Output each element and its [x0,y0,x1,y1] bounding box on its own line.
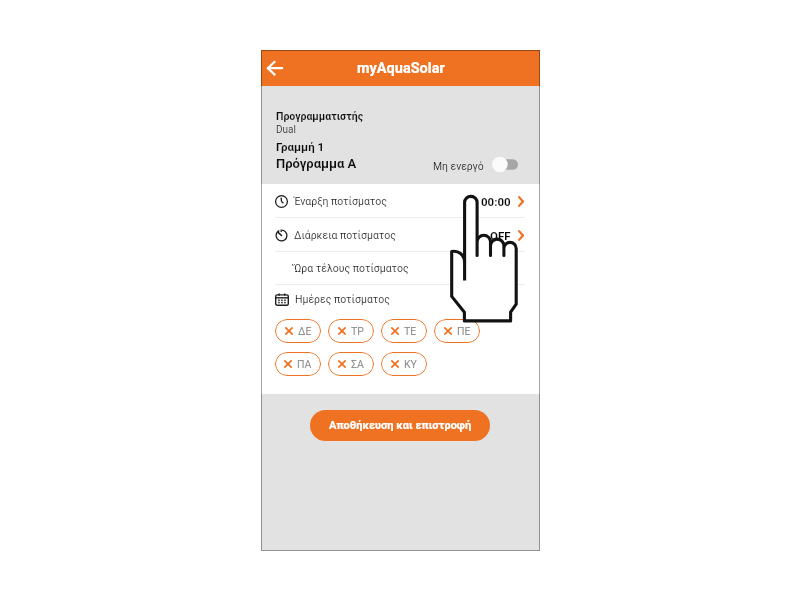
staticText: Αποθήκευση και επιστροφή [329,419,472,432]
staticText: ΤΕ [404,325,417,337]
button[interactable]: ΤΕ [381,319,427,343]
button[interactable]: Toggle program active [492,156,519,173]
button[interactable]: ΠΑ [275,352,321,376]
button[interactable]: Αποθήκευση και επιστροφή [310,410,490,441]
staticText: Γραμμή 1 [276,140,325,153]
staticText: Ὥρα τέλους ποτίσματος [294,262,409,274]
staticText: Ημέρες ποτίσματος [295,293,390,305]
staticText: myAquaSolar [357,60,445,77]
staticText: 00:00 [481,195,511,208]
button[interactable]: ΔΕ [275,319,321,343]
staticText: Dual [276,124,296,136]
button[interactable]: Back [263,54,291,82]
button[interactable]: ΠΕ [434,319,480,343]
staticText: Πρόγραμμα Α [276,156,357,171]
staticText: Διάρκεια ποτίσματος [294,229,396,241]
staticText: ΔΕ [298,325,312,337]
button[interactable]: ΚΥ [381,352,427,376]
button[interactable]: ΣΑ [328,352,374,376]
staticText: ΤΡ [351,325,364,337]
staticText: ΠΑ [297,358,312,370]
button[interactable]: ΤΡ [328,319,374,343]
staticText: ΣΑ [351,358,364,370]
staticText: Προγραμματιστής [276,110,364,122]
staticText: Έναρξη ποτίσματος [294,195,387,207]
staticText: Μη ενεργό [433,160,484,172]
button[interactable]: Διάρκεια ποτίσματος [261,218,540,252]
staticText: ΠΕ [457,325,471,337]
button[interactable]: Ὥρα τέλους ποτίσματος [261,251,540,285]
staticText: OFF [490,229,511,242]
staticText: ΚΥ [404,358,417,370]
button[interactable]: Έναρξη ποτίσματος [261,184,540,218]
